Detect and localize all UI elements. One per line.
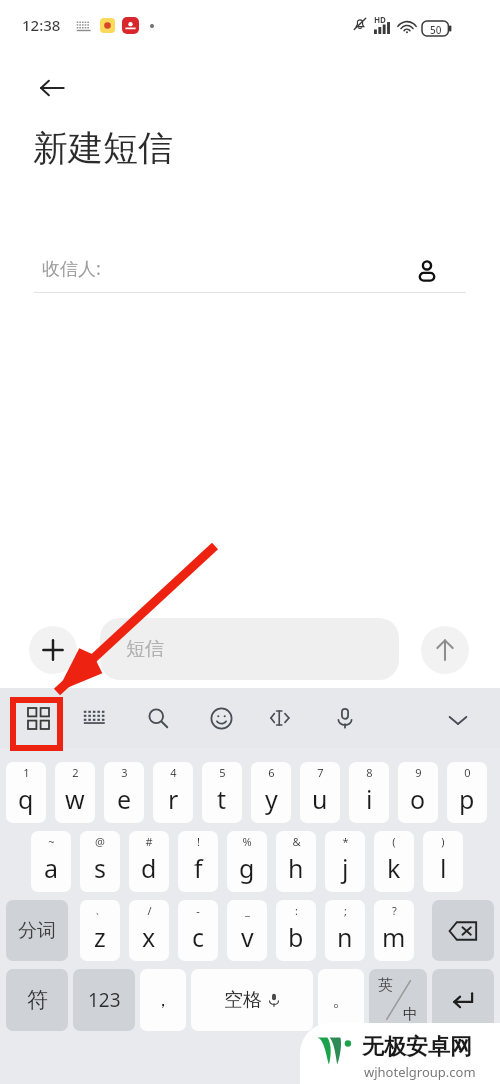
staticText: / — [147, 903, 152, 918]
staticText: l — [440, 851, 447, 885]
button[interactable]: # — [129, 831, 169, 892]
staticText: h — [288, 851, 304, 885]
button[interactable]: ~ — [31, 831, 71, 892]
button[interactable]: 、 — [80, 900, 120, 961]
button[interactable]: ， — [140, 969, 186, 1031]
button[interactable]: 9 — [398, 762, 438, 823]
button[interactable]: & — [276, 831, 316, 892]
staticText: d — [141, 851, 157, 885]
button[interactable]: Send — [421, 626, 469, 674]
staticText: 50 — [430, 23, 442, 37]
button[interactable]: ? — [374, 900, 414, 961]
staticText: _ — [245, 903, 250, 918]
staticText: 分词 — [18, 919, 56, 943]
staticText: 中 — [403, 1005, 418, 1024]
staticText: r — [168, 782, 179, 816]
staticText: 、 — [95, 903, 106, 917]
button[interactable]: Emoji — [203, 700, 239, 736]
staticText: g — [239, 851, 255, 885]
staticText: t — [217, 782, 227, 816]
staticText: 12:38 — [22, 15, 61, 35]
button[interactable]: Voice input — [327, 700, 363, 736]
button[interactable]: 短信 — [100, 618, 399, 680]
button[interactable]: ( — [374, 831, 414, 892]
button[interactable]: % — [227, 831, 267, 892]
staticText: # — [145, 834, 153, 849]
staticText: 2 — [72, 765, 79, 780]
button[interactable]: ! — [178, 831, 218, 892]
button[interactable]: 符 — [6, 969, 68, 1031]
button[interactable]: @ — [80, 831, 120, 892]
staticText: * — [342, 834, 349, 849]
staticText: ! — [197, 834, 200, 849]
staticText: % — [242, 834, 252, 849]
staticText: e — [117, 782, 132, 816]
staticText: v — [241, 920, 254, 954]
staticText: & — [292, 834, 301, 849]
button[interactable]: 3 — [104, 762, 144, 823]
staticText: 3 — [121, 765, 128, 780]
button[interactable]: 空格 — [191, 969, 313, 1031]
button[interactable]: 2 — [55, 762, 95, 823]
staticText: wjhotelgroup.com — [364, 1063, 476, 1081]
staticText: x — [142, 920, 156, 954]
staticText: p — [459, 782, 475, 816]
staticText: 英 — [378, 976, 393, 995]
staticText: HD — [374, 14, 386, 25]
button[interactable]: Switch keyboard — [76, 700, 112, 736]
staticText: y — [265, 782, 278, 816]
staticText: 0 — [464, 765, 471, 780]
button[interactable]: - — [178, 900, 218, 961]
staticText: 无极安卓网 — [362, 1033, 472, 1061]
button[interactable]: / — [129, 900, 169, 961]
staticText: z — [94, 920, 106, 954]
staticText: 123 — [88, 987, 121, 1013]
staticText: : — [295, 903, 298, 918]
staticText: - — [196, 903, 200, 918]
button[interactable]: 1 — [6, 762, 46, 823]
staticText: w — [65, 782, 85, 816]
button[interactable]: 5 — [202, 762, 242, 823]
staticText: s — [94, 851, 106, 885]
button[interactable]: _ — [227, 900, 267, 961]
staticText: o — [410, 782, 426, 816]
button[interactable]: Hide keyboard — [438, 700, 478, 740]
button[interactable]: 123 — [73, 969, 135, 1031]
button[interactable]: 英 — [369, 969, 427, 1031]
button[interactable]: 。 — [318, 969, 364, 1031]
staticText: k — [387, 851, 401, 885]
staticText: q — [18, 782, 34, 816]
button[interactable]: * — [325, 831, 365, 892]
button[interactable]: Back — [26, 62, 78, 114]
button[interactable]: 4 — [153, 762, 193, 823]
button[interactable]: : — [276, 900, 316, 961]
button[interactable]: Search — [140, 700, 176, 736]
staticText: f — [194, 851, 203, 885]
staticText: m — [382, 920, 406, 954]
staticText: n — [337, 920, 353, 954]
staticText: ( — [392, 834, 396, 849]
button[interactable]: 分词 — [6, 900, 68, 961]
button[interactable]: ; — [325, 900, 365, 961]
staticText: ? — [392, 903, 397, 918]
button[interactable] — [432, 900, 494, 961]
button[interactable]: 6 — [251, 762, 291, 823]
staticText: 空格 — [224, 988, 262, 1012]
staticText: ~ — [48, 834, 55, 849]
staticText: 4 — [170, 765, 177, 780]
button[interactable]: Move cursor — [263, 700, 299, 736]
button[interactable]: Add attachment — [29, 626, 77, 674]
staticText: @ — [95, 834, 105, 849]
button[interactable]: Choose contact — [404, 248, 450, 294]
button[interactable]: 0 — [447, 762, 487, 823]
staticText: u — [312, 782, 328, 816]
button[interactable]: Keyboard layouts — [20, 700, 56, 736]
staticText: ) — [441, 834, 445, 849]
button[interactable]: 8 — [349, 762, 389, 823]
staticText: 9 — [415, 765, 422, 780]
button[interactable] — [432, 969, 494, 1031]
button[interactable]: 7 — [300, 762, 340, 823]
button[interactable]: ) — [423, 831, 463, 892]
staticText: 。 — [332, 989, 350, 1012]
staticText: c — [192, 920, 205, 954]
